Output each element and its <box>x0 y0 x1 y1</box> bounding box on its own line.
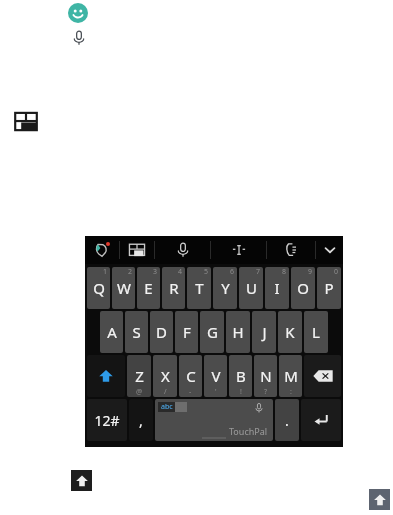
staticText: @ <box>136 387 143 397</box>
staticText: 0 <box>334 267 339 277</box>
button[interactable]: V <box>204 355 227 397</box>
button[interactable]: S <box>125 311 148 353</box>
staticText: - <box>189 387 192 397</box>
staticText: . <box>285 411 289 430</box>
button[interactable]: C <box>179 355 202 397</box>
button[interactable]: Voice input <box>68 27 90 49</box>
staticText: U <box>246 278 257 298</box>
staticText: 4 <box>178 267 183 277</box>
staticText: ! <box>240 387 242 397</box>
button[interactable]: N <box>254 355 277 397</box>
button[interactable]: Symbols <box>87 399 127 441</box>
staticText: 1 <box>103 267 108 277</box>
staticText: 7 <box>256 267 261 277</box>
staticText: / <box>164 387 167 397</box>
staticText: O <box>297 278 309 298</box>
button[interactable]: M <box>279 355 302 397</box>
staticText: T <box>195 278 204 298</box>
button[interactable]: Shift <box>369 489 390 510</box>
staticText: V <box>211 366 221 386</box>
staticText: I <box>274 278 280 298</box>
staticText: 2 <box>128 267 133 277</box>
button[interactable]: K <box>278 311 302 353</box>
button[interactable]: T <box>187 267 211 309</box>
button[interactable]: B <box>229 355 252 397</box>
staticText: X <box>161 366 170 386</box>
staticText: B <box>236 366 246 386</box>
button[interactable]: Gesture input <box>267 236 315 264</box>
button[interactable]: R <box>162 267 185 309</box>
button[interactable]: E <box>137 267 160 309</box>
staticText: P <box>324 278 334 298</box>
staticText: S <box>132 322 141 342</box>
button[interactable]: Z <box>127 355 151 397</box>
staticText: 6 <box>230 267 235 277</box>
staticText: 9 <box>308 267 313 277</box>
staticText: TouchPal <box>229 425 268 437</box>
button[interactable]: Switch language <box>120 236 154 264</box>
staticText: Q <box>93 278 105 298</box>
button[interactable]: Cursor control <box>211 236 266 264</box>
staticText: N <box>260 366 272 386</box>
button[interactable]: X <box>153 355 177 397</box>
staticText: W <box>117 278 131 298</box>
staticText: J <box>262 322 267 342</box>
staticText: abc <box>161 402 173 412</box>
staticText: , <box>139 411 143 430</box>
button[interactable]: Shift <box>71 470 92 491</box>
staticText: G <box>207 322 218 342</box>
staticText: 12# <box>94 411 120 430</box>
staticText: C <box>186 366 196 386</box>
staticText: ? <box>264 387 268 397</box>
button[interactable]: J <box>252 311 276 353</box>
staticText: L <box>312 322 320 342</box>
button[interactable]: P <box>317 267 341 309</box>
staticText: E <box>144 278 153 298</box>
button[interactable]: Space <box>155 399 273 441</box>
button[interactable]: F <box>175 311 198 353</box>
button[interactable]: A <box>100 311 123 353</box>
button[interactable]: Keyboard language <box>13 109 39 135</box>
button[interactable]: U <box>239 267 263 309</box>
staticText: K <box>285 322 295 342</box>
button[interactable]: Emoji <box>68 3 88 23</box>
staticText: 8 <box>282 267 287 277</box>
staticText: F <box>183 322 191 342</box>
staticText: Z <box>135 366 144 386</box>
staticText: 3 <box>153 267 158 277</box>
button[interactable]: Backspace <box>304 355 341 397</box>
button[interactable]: Y <box>213 267 237 309</box>
staticText: A <box>107 322 117 342</box>
staticText: M <box>284 366 298 386</box>
button[interactable]: Shift <box>87 355 125 397</box>
button[interactable]: I <box>265 267 289 309</box>
staticText: D <box>156 322 167 342</box>
staticText: ' <box>215 387 217 397</box>
button[interactable]: O <box>291 267 315 309</box>
staticText: Y <box>221 278 230 298</box>
button[interactable]: TouchPal menu <box>85 236 119 264</box>
button[interactable]: Comma <box>129 399 153 441</box>
staticText: : <box>290 387 292 397</box>
staticText: 5 <box>204 267 209 277</box>
button[interactable]: G <box>200 311 224 353</box>
button[interactable]: Period <box>275 399 299 441</box>
staticText: H <box>232 322 244 342</box>
button[interactable]: L <box>304 311 328 353</box>
button[interactable]: Voice input <box>155 236 210 264</box>
button[interactable]: H <box>226 311 250 353</box>
button[interactable]: Hide keyboard <box>316 236 343 264</box>
staticText: R <box>169 278 179 298</box>
button[interactable]: Q <box>87 267 110 309</box>
button[interactable]: Enter <box>301 399 341 441</box>
button[interactable]: D <box>150 311 173 353</box>
button[interactable]: W <box>112 267 135 309</box>
